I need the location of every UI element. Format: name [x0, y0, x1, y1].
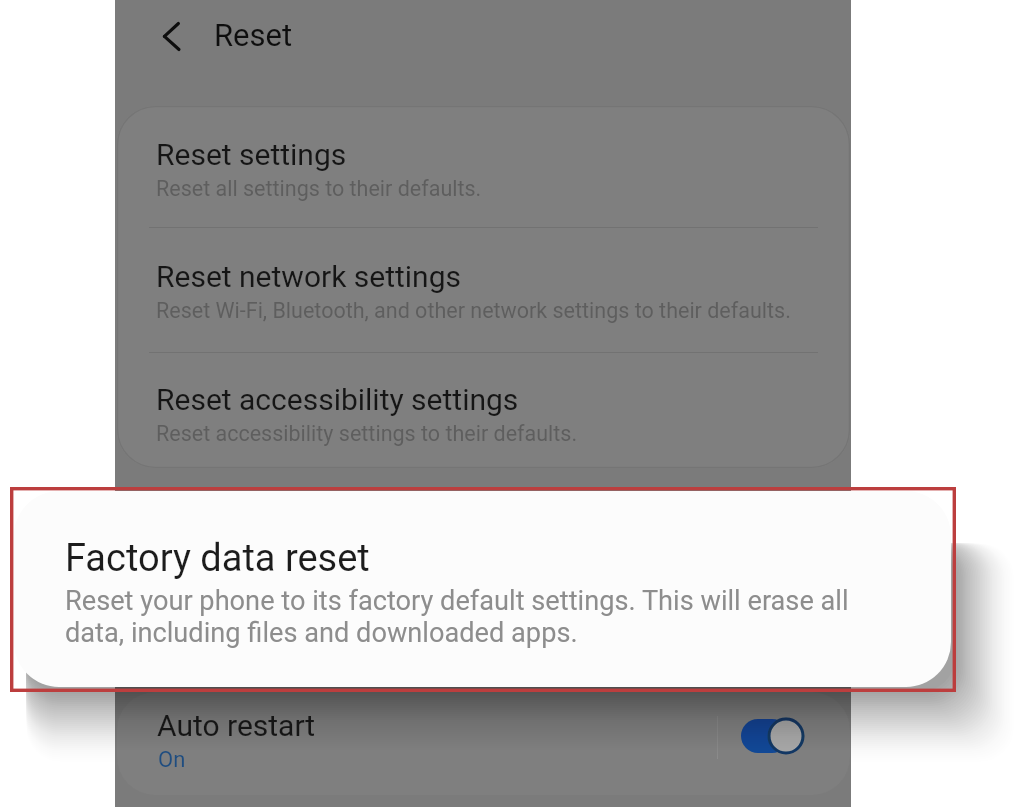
staticText: Factory data reset: [65, 536, 370, 581]
staticText: Reset: [214, 17, 293, 53]
staticText: Reset your phone to its factory default …: [65, 585, 877, 649]
staticText: Reset all settings to their defaults.: [156, 176, 482, 201]
button[interactable]: Auto restart toggle: [737, 706, 815, 780]
button[interactable]: Reset settings: [117, 106, 850, 227]
staticText: Reset accessibility settings to their de…: [156, 421, 578, 446]
staticText: On: [158, 747, 186, 773]
staticText: Reset Wi-Fi, Bluetooth, and other networ…: [156, 298, 791, 323]
staticText: Reset network settings: [156, 259, 462, 294]
staticText: Auto restart: [157, 708, 316, 743]
button[interactable]: Reset network settings: [117, 228, 850, 349]
button[interactable]: Auto restart: [117, 692, 850, 795]
button[interactable]: Back: [148, 8, 206, 66]
staticText: Reset settings: [156, 137, 347, 172]
staticText: Reset accessibility settings: [156, 382, 519, 417]
button[interactable]: Reset accessibility settings: [117, 351, 850, 468]
button[interactable]: Factory data reset: [14, 491, 951, 687]
